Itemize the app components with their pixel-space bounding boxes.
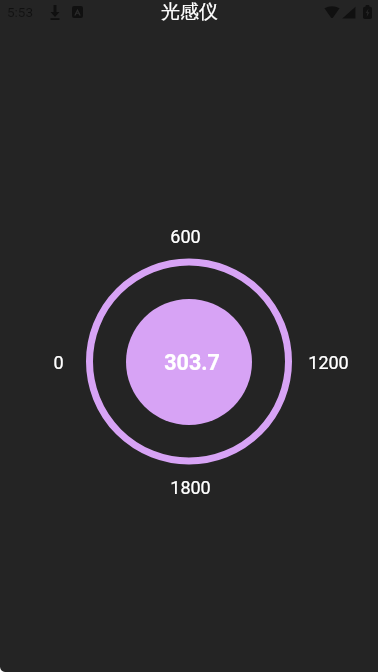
staticText: 0 <box>53 352 64 373</box>
staticText: 1200 <box>308 352 349 373</box>
staticText: 303.7 <box>164 350 220 375</box>
staticText: 600 <box>170 226 201 247</box>
other: Battery charging <box>363 5 372 19</box>
staticText: 5:53 <box>7 4 34 20</box>
staticText: 1800 <box>170 477 211 498</box>
button[interactable]: Download complete <box>48 3 62 22</box>
staticText: 光感仪 <box>161 0 218 24</box>
button[interactable]: 303.7 <box>126 299 252 425</box>
button[interactable]: Screenshot <box>70 4 85 20</box>
other: Wi-Fi <box>323 6 341 18</box>
other: Mobile signal <box>342 6 356 19</box>
